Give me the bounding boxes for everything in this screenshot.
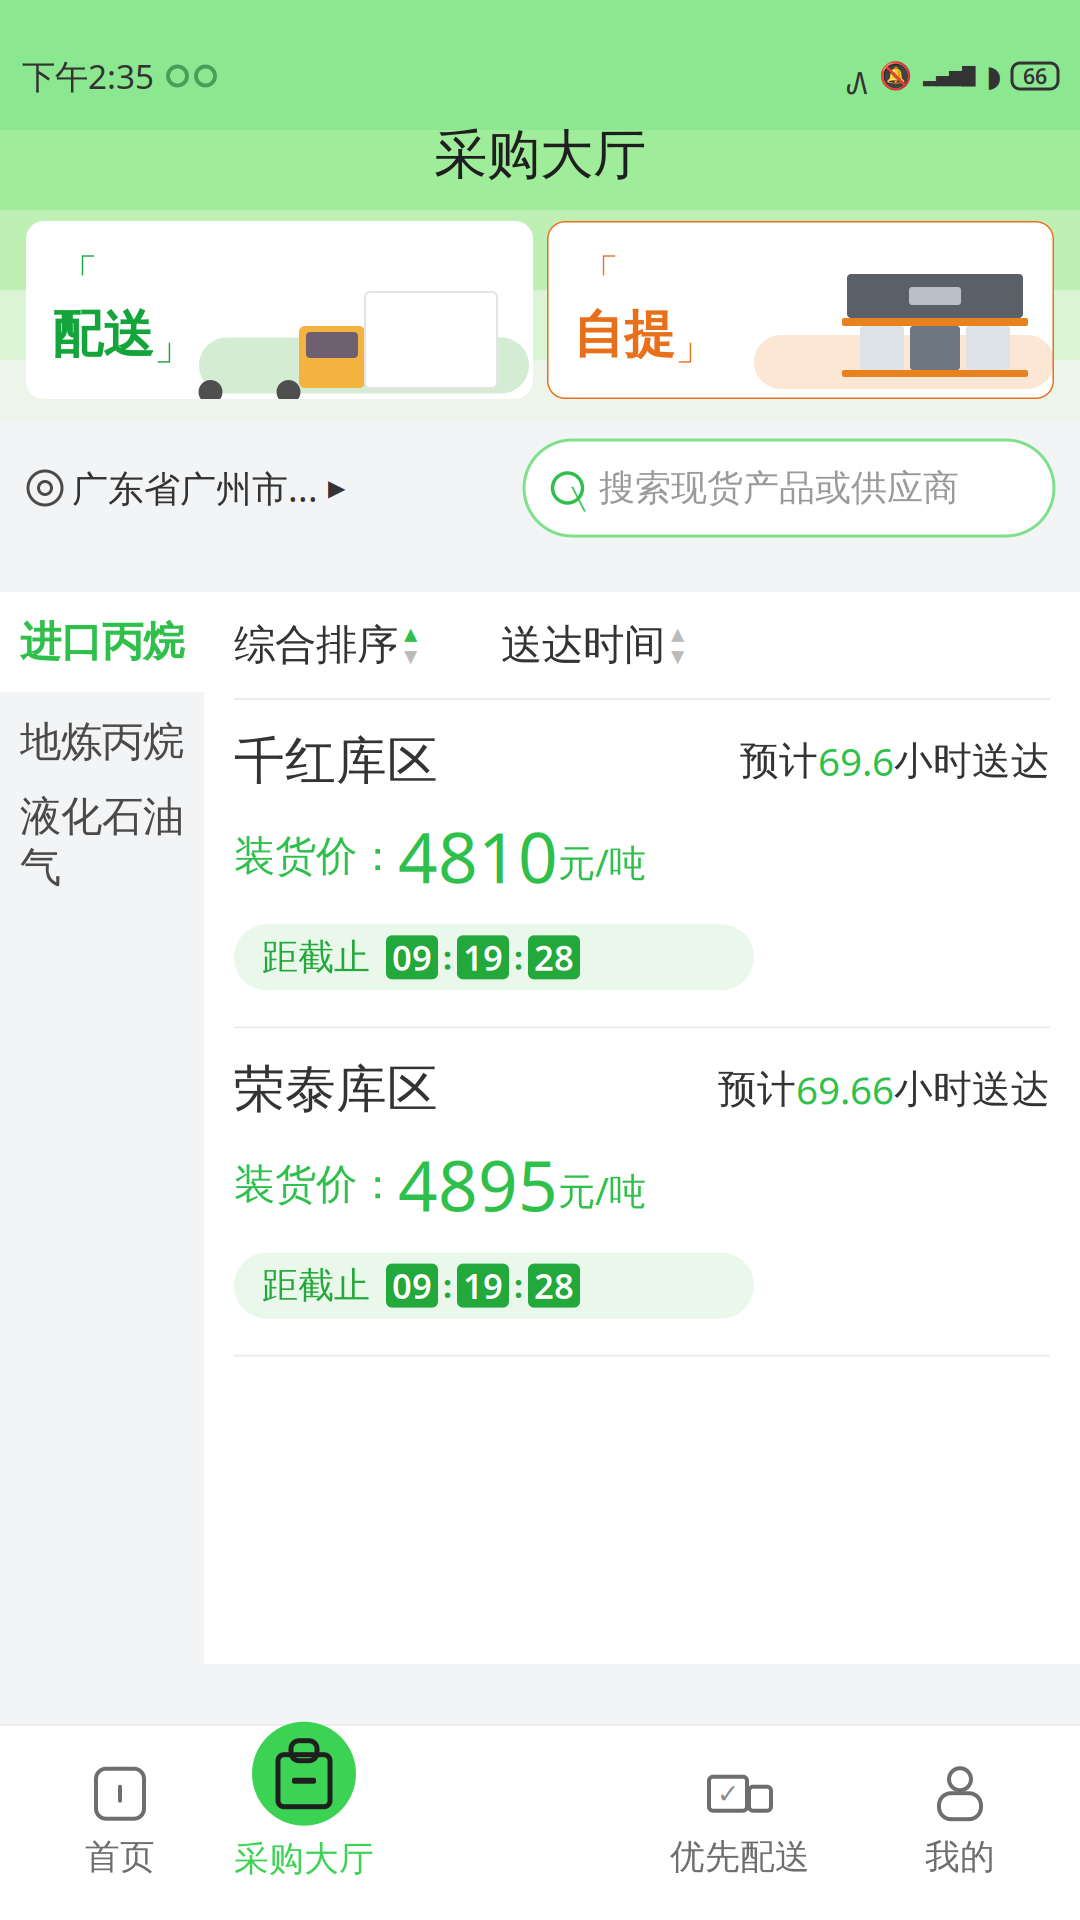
staticText: 09 bbox=[392, 934, 432, 980]
button[interactable]: 地炼丙烷 bbox=[0, 692, 204, 792]
staticText: 优先配送 bbox=[670, 1836, 810, 1878]
staticText: 4895 bbox=[398, 1138, 558, 1231]
staticText: 配送 bbox=[52, 303, 154, 366]
staticText: 地炼丙烷 bbox=[20, 717, 184, 767]
staticText: 装货价： bbox=[234, 831, 398, 882]
staticText: ᠕ bbox=[846, 50, 868, 102]
staticText: 小时送达 bbox=[894, 1066, 1050, 1113]
staticText: 广东省广州市... bbox=[72, 464, 318, 512]
button[interactable]: 液化石油气 bbox=[0, 792, 204, 892]
staticText: 」 bbox=[675, 321, 715, 370]
button[interactable]: ✓ bbox=[630, 1766, 850, 1878]
staticText: 元/吨 bbox=[558, 837, 646, 887]
staticText: : bbox=[514, 1264, 523, 1307]
staticText: 预计 bbox=[740, 737, 818, 785]
staticText: 搜索现货产品或供应商 bbox=[599, 466, 959, 510]
staticText: 液化石油气 bbox=[20, 791, 184, 893]
staticText: 采购大厅 bbox=[434, 122, 646, 188]
staticText: 4810 bbox=[398, 810, 558, 902]
staticText: ▼ bbox=[671, 646, 684, 666]
staticText: ▶ bbox=[328, 475, 345, 501]
staticText: ▲ bbox=[404, 624, 417, 643]
staticText: 自提 bbox=[573, 303, 675, 366]
staticText: 28 bbox=[534, 934, 574, 980]
staticText: ▂▄▆█ bbox=[923, 66, 975, 86]
staticText: 元/吨 bbox=[558, 1166, 646, 1215]
staticText: 首页 bbox=[85, 1836, 155, 1878]
staticText: 进口丙烷 bbox=[20, 617, 184, 667]
staticText: 09 bbox=[392, 1263, 432, 1309]
button[interactable]: 广东省广州市... bbox=[0, 464, 345, 512]
staticText: 我的 bbox=[925, 1836, 995, 1878]
staticText: 19 bbox=[463, 1263, 503, 1309]
staticText: 送达时间 bbox=[501, 620, 665, 670]
staticText: ╲ bbox=[572, 487, 585, 511]
staticText: 小时送达 bbox=[894, 737, 1050, 785]
staticText: 66 bbox=[1023, 62, 1047, 90]
staticText: 下午2:35 bbox=[22, 54, 154, 98]
staticText: 69.6 bbox=[818, 735, 894, 787]
button[interactable]: 「 bbox=[26, 221, 533, 399]
staticText: 28 bbox=[534, 1263, 574, 1309]
button[interactable]: ╲ bbox=[524, 440, 1054, 536]
button[interactable]: 采购大厅 bbox=[234, 1722, 374, 1886]
button[interactable]: 我的 bbox=[850, 1766, 1070, 1878]
staticText: 装货价： bbox=[234, 1159, 398, 1210]
staticText: 「 bbox=[579, 250, 619, 299]
button[interactable]: 综合排序 bbox=[234, 620, 417, 670]
staticText: : bbox=[443, 936, 452, 979]
button[interactable]: 千红库区 bbox=[204, 700, 1080, 1028]
staticText: 「 bbox=[58, 250, 98, 299]
staticText: ▲ bbox=[671, 624, 684, 643]
staticText: 预计 bbox=[718, 1066, 796, 1113]
staticText: 综合排序 bbox=[234, 620, 398, 670]
button[interactable]: 首页 bbox=[10, 1766, 230, 1878]
staticText: 千红库区 bbox=[234, 730, 438, 792]
staticText: 距截止 bbox=[262, 935, 370, 979]
button[interactable]: 送达时间 bbox=[501, 620, 684, 670]
staticText: 距截止 bbox=[262, 1263, 370, 1308]
staticText: : bbox=[514, 936, 523, 979]
staticText: 69.66 bbox=[796, 1064, 894, 1115]
staticText: 🔕 bbox=[879, 61, 912, 91]
button[interactable]: 进口丙烷 bbox=[0, 592, 204, 692]
button[interactable]: 荣泰库区 bbox=[204, 1028, 1080, 1357]
staticText: : bbox=[443, 1264, 452, 1307]
staticText: ▼ bbox=[404, 646, 417, 666]
staticText: 19 bbox=[463, 934, 503, 980]
staticText: 荣泰库区 bbox=[234, 1058, 438, 1120]
staticText: ◗ bbox=[986, 59, 1001, 93]
button[interactable]: 「 bbox=[547, 221, 1054, 399]
staticText: 」 bbox=[154, 321, 194, 370]
staticText: ✓ bbox=[717, 1779, 739, 1809]
staticText: 采购大厅 bbox=[234, 1838, 374, 1880]
